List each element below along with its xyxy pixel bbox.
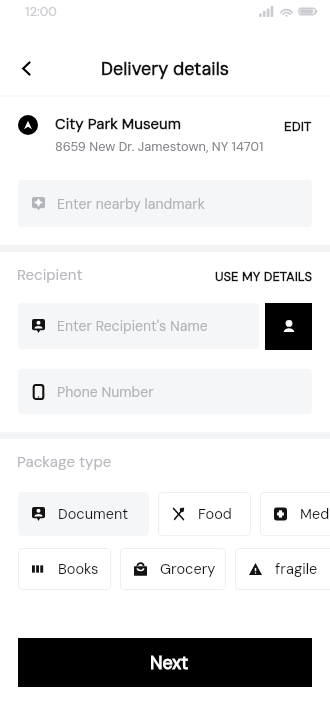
staticText: Enter nearby landmark — [57, 195, 205, 213]
button[interactable]: Back — [9, 51, 43, 85]
staticText: Document — [58, 505, 129, 524]
staticText: Books — [58, 560, 99, 579]
staticText: USE MY DETAILS — [215, 268, 312, 285]
staticText: Package type — [17, 452, 112, 472]
staticText: Delivery details — [101, 57, 229, 80]
button[interactable]: Food — [158, 492, 251, 536]
button[interactable]: Books — [18, 548, 111, 590]
button[interactable]: Phone Number — [18, 369, 312, 414]
staticText: City Park Museum — [55, 114, 181, 134]
staticText: Phone Number — [57, 383, 154, 401]
staticText: 12:00 — [25, 3, 57, 20]
staticText: Grocery — [160, 560, 216, 579]
staticText: 8659 New Dr. Jamestown, NY 14701 — [55, 138, 264, 155]
button[interactable]: Grocery — [120, 548, 226, 590]
button[interactable]: Enter Recipient's Name — [18, 303, 259, 349]
button[interactable]: Med — [260, 492, 330, 536]
staticText: Med — [300, 505, 330, 524]
staticText: fragile — [275, 560, 318, 579]
staticText: Recipient — [17, 265, 83, 285]
staticText: Food — [198, 505, 232, 524]
staticText: Enter Recipient's Name — [57, 317, 208, 335]
staticText: EDIT — [284, 118, 312, 136]
button[interactable]: USE MY DETAILS — [205, 262, 322, 291]
staticText: Next — [150, 651, 189, 674]
button[interactable]: Pick from contacts — [265, 303, 312, 350]
button[interactable]: EDIT — [278, 112, 318, 142]
button[interactable]: fragile — [235, 548, 330, 590]
button[interactable]: Enter nearby landmark — [18, 180, 312, 227]
button[interactable]: Next — [18, 638, 312, 687]
button[interactable]: Document — [18, 492, 149, 536]
